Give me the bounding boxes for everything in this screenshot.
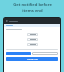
button[interactable]: Notify me [6, 57, 58, 61]
button[interactable]: Input field [27, 33, 38, 36]
staticText: Get notified before [13, 2, 52, 8]
button[interactable]: Primary action [6, 52, 31, 55]
button[interactable]: Input field [27, 38, 38, 41]
staticText: items end [22, 8, 43, 14]
staticText: Notify me [27, 58, 38, 61]
button[interactable]: Secondary action [32, 52, 58, 55]
button[interactable]: Input field [27, 43, 38, 46]
button[interactable]: App bar [4, 18, 60, 24]
